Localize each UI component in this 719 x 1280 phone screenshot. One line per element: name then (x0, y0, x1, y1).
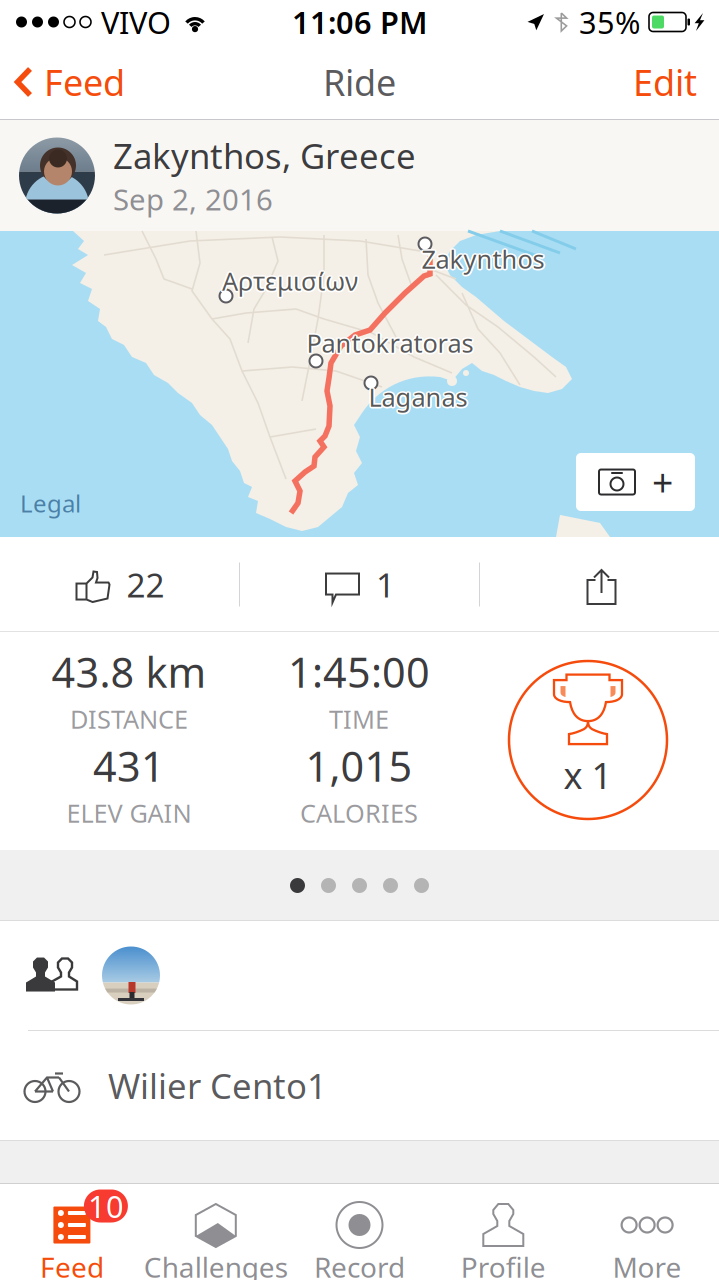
button[interactable]: Challenges (144, 1183, 288, 1280)
staticText: Laganas (367, 380, 466, 414)
staticText: Sep 2, 2016 (113, 179, 273, 218)
staticText: Laganas (368, 382, 467, 415)
staticText: Pantokratoras (306, 326, 473, 360)
staticText: + (652, 457, 673, 507)
button[interactable]: 22 (0, 537, 239, 632)
button[interactable]: Profile (431, 1183, 575, 1280)
staticText: ELEV GAIN (66, 796, 191, 830)
staticText: 11:06 PM (292, 2, 427, 42)
button[interactable]: Wilier Cento1 (0, 1031, 719, 1140)
button[interactable]: Edit (633, 44, 719, 120)
staticText: Laganas (370, 381, 469, 415)
staticText: Feed (44, 58, 125, 106)
button[interactable] (0, 921, 719, 1030)
staticText: Zakynthos (420, 243, 543, 277)
staticText: Legal (20, 487, 81, 519)
staticText: Pantokratoras (305, 326, 472, 360)
staticText: Αρτεμισίων (221, 263, 357, 297)
button[interactable]: Add photo (576, 453, 695, 511)
staticText: Laganas (368, 378, 467, 412)
staticText: 43.8 km (51, 644, 206, 699)
button[interactable]: Record (288, 1183, 431, 1280)
button[interactable]: Share (480, 537, 719, 632)
staticText: Pantokratoras (305, 327, 472, 361)
staticText: CALORIES (300, 796, 418, 830)
staticText: Challenges (144, 1248, 288, 1280)
staticText: Zakynthos, Greece (113, 132, 416, 178)
staticText: 22 (126, 562, 164, 607)
staticText: Wilier Cento1 (108, 1062, 327, 1108)
staticText: Αρτεμισίων (222, 262, 358, 296)
staticText: VIVO (101, 2, 171, 42)
staticText: Pantokratoras (305, 325, 472, 359)
staticText: Pantokratoras (308, 325, 475, 359)
staticText: Zakynthos (421, 244, 544, 277)
staticText: Zakynthos (421, 240, 544, 274)
staticText: Laganas (370, 380, 469, 414)
staticText: Αρτεμισίων (223, 265, 359, 299)
button[interactable]: Feed (0, 44, 125, 120)
staticText: Pantokratoras (308, 327, 475, 361)
staticText: Pantokratoras (308, 326, 475, 360)
staticText: Zakynthos (423, 243, 546, 277)
staticText: Record (314, 1248, 405, 1280)
staticText: Zakynthos (423, 242, 546, 276)
staticText: Αρτεμισίων (224, 264, 360, 298)
staticText: Ride (323, 58, 396, 106)
staticText: Αρτεμισίων (221, 265, 357, 299)
staticText: 431 (93, 738, 165, 793)
staticText: 10 (88, 1186, 124, 1226)
staticText: Αρτεμισίων (222, 264, 358, 298)
staticText: Αρτεμισίων (222, 266, 358, 299)
staticText: TIME (329, 702, 389, 736)
button[interactable]: 10 (0, 1183, 144, 1280)
staticText: Profile (461, 1248, 546, 1280)
staticText: x 1 (563, 751, 612, 799)
staticText: Αρτεμισίων (223, 263, 359, 297)
staticText: Pantokratoras (306, 324, 473, 358)
button[interactable]: 1 (240, 537, 479, 632)
staticText: Feed (40, 1248, 104, 1280)
staticText: DISTANCE (70, 702, 188, 736)
staticText: Pantokratoras (306, 328, 473, 361)
staticText: Αρτεμισίων (220, 264, 356, 298)
staticText: Zakynthos (421, 242, 544, 276)
staticText: Edit (633, 58, 697, 106)
staticText: Zakynthos (420, 241, 543, 275)
staticText: Zakynthos (420, 242, 543, 276)
staticText: 1,015 (305, 738, 412, 793)
staticText: Zakynthos (423, 241, 546, 275)
staticText: Laganas (368, 380, 467, 414)
staticText: More (613, 1248, 682, 1280)
staticText: 35% (579, 2, 640, 42)
staticText: Laganas (367, 381, 466, 415)
staticText: 1:45:00 (288, 644, 430, 699)
button[interactable]: More (575, 1183, 719, 1280)
staticText: Laganas (370, 379, 469, 413)
staticText: 1 (376, 562, 395, 607)
staticText: Laganas (367, 379, 466, 413)
